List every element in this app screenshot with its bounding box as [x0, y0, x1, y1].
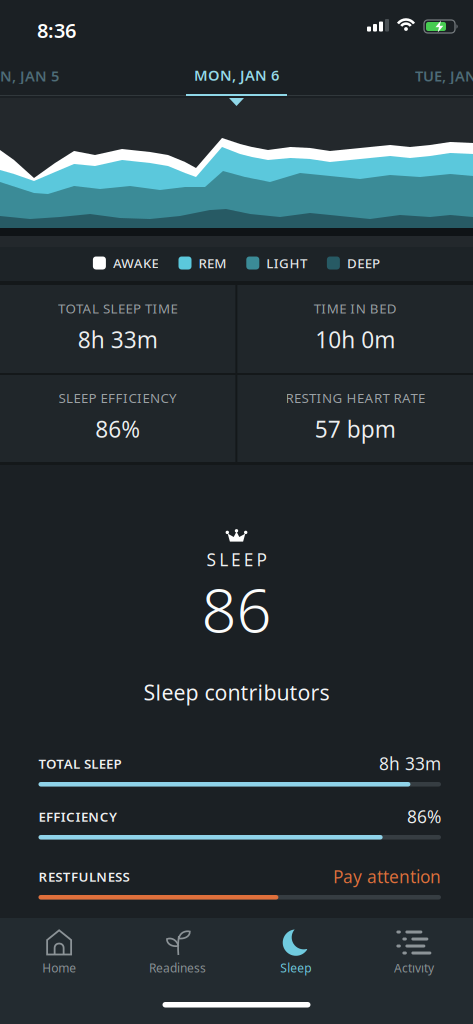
staticText: 8:36 [37, 17, 76, 44]
staticText: TIME IN BED [314, 300, 397, 317]
staticText: Sleep contributors [143, 678, 329, 706]
staticText: Readiness [149, 960, 206, 976]
staticText: EFFICIENCY [38, 808, 117, 825]
staticText: 86 [201, 568, 271, 649]
staticText: SLEEP [206, 548, 267, 571]
staticText: TUE, JAN [415, 66, 473, 85]
staticText: LIGHT [266, 254, 307, 272]
staticText: 8h 33m [379, 752, 441, 775]
staticText: Sleep [280, 960, 311, 976]
staticText: 10h 0m [315, 324, 395, 354]
staticText: UN, JAN 5 [0, 66, 59, 85]
staticText: MON, JAN 6 [194, 65, 279, 85]
staticText: DEEP [347, 254, 380, 272]
staticText: SLEEP EFFICIENCY [58, 389, 177, 407]
staticText: TOTAL SLEEP [38, 755, 121, 772]
staticText: Activity [394, 960, 434, 976]
staticText: RESTING HEART RATE [285, 389, 425, 407]
staticText: REM [198, 254, 226, 272]
staticText: TOTAL SLEEP TIME [58, 300, 177, 317]
staticText: RESTFULNESS [38, 868, 129, 885]
staticText: Pay attention [333, 865, 441, 888]
staticText: Home [42, 960, 76, 976]
staticText: 57 bpm [315, 414, 396, 444]
staticText: 8h 33m [78, 324, 158, 354]
staticText: 86% [95, 414, 140, 444]
staticText: 86% [407, 805, 441, 828]
staticText: AWAKE [113, 254, 158, 272]
